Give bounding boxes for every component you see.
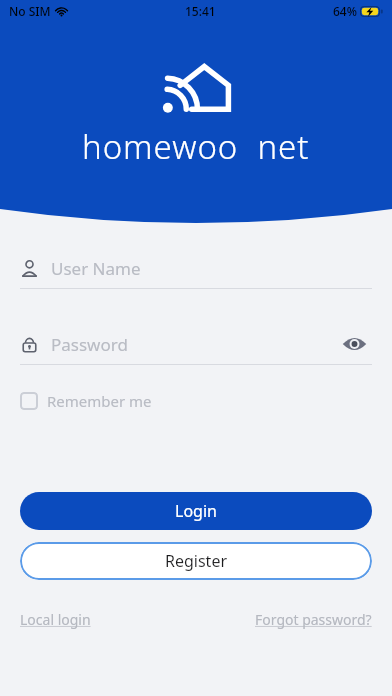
- button[interactable]: Show password: [336, 326, 372, 362]
- staticText: Password: [51, 333, 128, 356]
- staticText: homewoo net: [82, 124, 310, 169]
- staticText: 15:41: [185, 3, 216, 19]
- button[interactable]: Login: [20, 492, 372, 530]
- button[interactable]: Register: [20, 542, 372, 580]
- button[interactable]: Local login: [20, 610, 91, 629]
- button[interactable]: Remember me: [20, 386, 152, 416]
- staticText: Local login: [20, 610, 91, 629]
- staticText: 64%: [333, 3, 357, 19]
- staticText: Forgot password?: [255, 610, 372, 629]
- staticText: Register: [165, 550, 228, 572]
- staticText: Login: [175, 500, 217, 522]
- button[interactable]: Forgot password?: [255, 610, 372, 629]
- staticText: Remember me: [47, 391, 152, 411]
- staticText: User Name: [51, 257, 141, 280]
- staticText: No SIM: [9, 3, 51, 19]
